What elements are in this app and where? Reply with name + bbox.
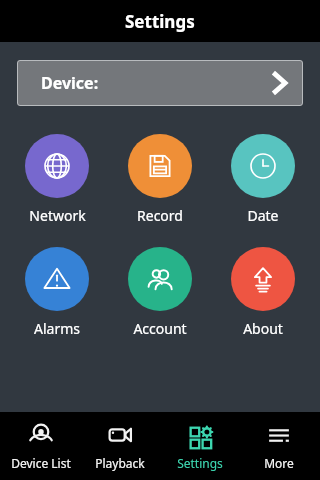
staticText: Device List (11, 455, 71, 471)
staticText: About (243, 319, 283, 338)
button[interactable]: Device: (17, 60, 303, 106)
button[interactable]: More (240, 412, 318, 480)
staticText: Record (137, 206, 183, 225)
staticText: Date (247, 206, 279, 225)
button[interactable]: Record (114, 134, 206, 225)
button[interactable]: Alarms (11, 247, 103, 338)
staticText: More (264, 455, 294, 471)
staticText: Playback (95, 455, 145, 471)
button[interactable]: Device List (2, 412, 80, 480)
button[interactable]: Playback (81, 412, 159, 480)
button[interactable]: About (217, 247, 309, 338)
button[interactable]: Account (114, 247, 206, 338)
staticText: Settings (125, 10, 195, 33)
staticText: Network (29, 206, 86, 225)
button[interactable]: Network (11, 134, 103, 225)
staticText: Settings (177, 455, 223, 471)
button[interactable]: Settings (161, 412, 239, 480)
button[interactable]: Date (217, 134, 309, 225)
staticText: Alarms (34, 319, 80, 338)
staticText: Device: (41, 72, 99, 94)
staticText: Account (133, 319, 187, 338)
